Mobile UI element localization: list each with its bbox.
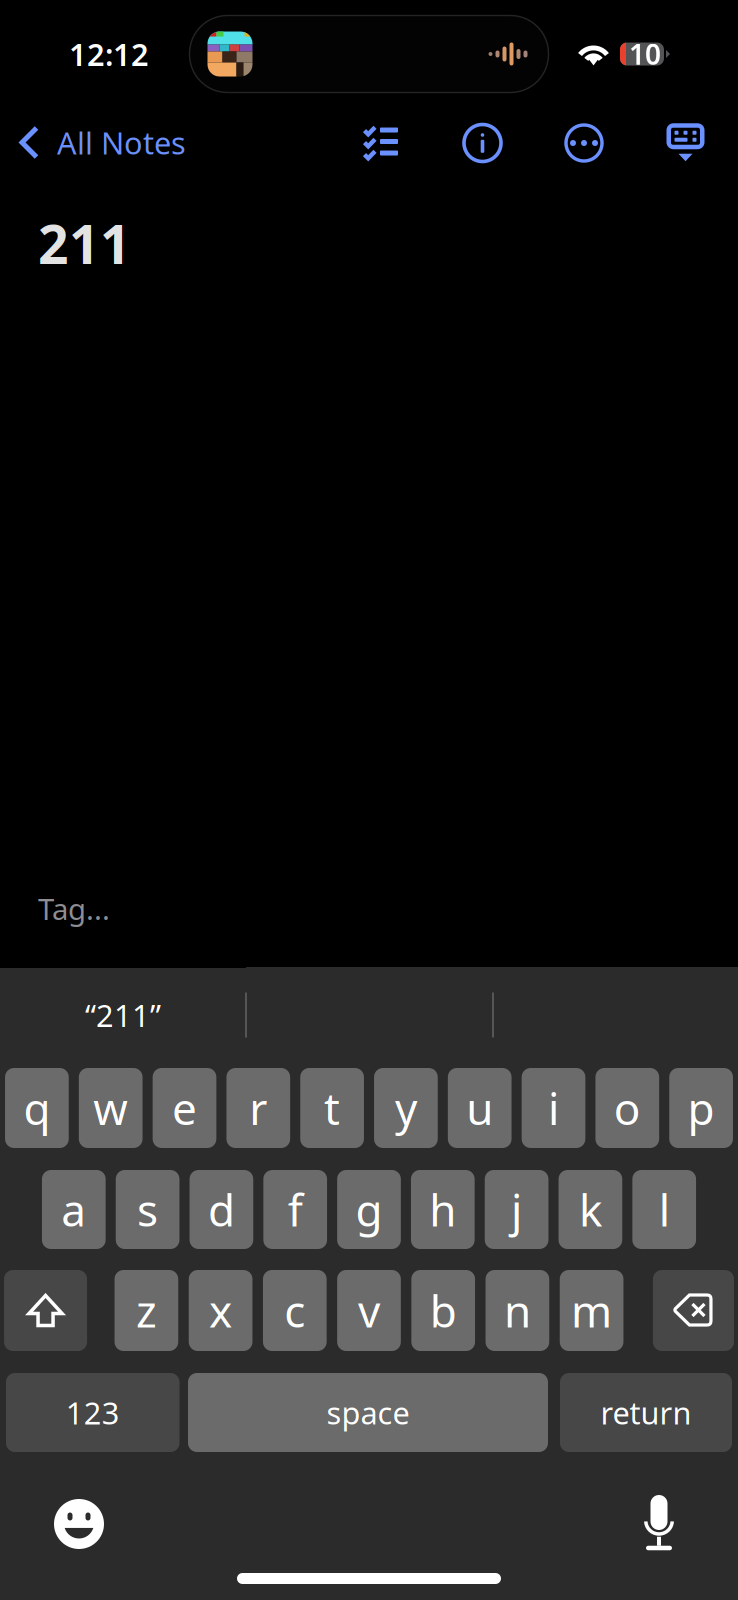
staticText: l (659, 1180, 670, 1239)
staticText: c (284, 1281, 305, 1340)
staticText: j (511, 1180, 522, 1239)
button[interactable]: Delete (653, 1270, 734, 1351)
button[interactable]: j (485, 1170, 548, 1249)
staticText: space (326, 1392, 409, 1433)
button[interactable]: v (337, 1270, 401, 1351)
button[interactable]: q (5, 1068, 69, 1148)
staticText: m (571, 1281, 612, 1340)
button[interactable]: 123 (6, 1373, 179, 1452)
button[interactable]: p (669, 1068, 733, 1148)
staticText: x (209, 1281, 232, 1340)
button[interactable]: o (595, 1068, 659, 1148)
button[interactable]: t (300, 1068, 364, 1148)
staticText: q (23, 1079, 50, 1137)
staticText: h (429, 1180, 456, 1239)
button[interactable]: a (42, 1170, 106, 1249)
staticText: u (466, 1079, 493, 1137)
staticText: s (137, 1180, 158, 1239)
button[interactable]: w (79, 1068, 143, 1148)
button[interactable]: x (189, 1270, 252, 1351)
button[interactable]: More options (548, 113, 620, 179)
staticText: 12:12 (69, 34, 149, 74)
button[interactable]: m (560, 1270, 623, 1351)
staticText: k (579, 1180, 602, 1239)
button[interactable]: e (153, 1068, 216, 1148)
staticText: t (324, 1079, 340, 1137)
button[interactable]: d (190, 1170, 253, 1249)
staticText: 10 (629, 35, 661, 73)
button[interactable]: z (115, 1270, 178, 1351)
button[interactable]: g (337, 1170, 401, 1249)
staticText: n (504, 1281, 531, 1340)
button[interactable]: y (374, 1068, 438, 1148)
button[interactable]: b (411, 1270, 475, 1351)
button[interactable]: h (411, 1170, 475, 1249)
staticText: 123 (66, 1392, 120, 1433)
staticText: g (355, 1180, 382, 1239)
staticText: All Notes (57, 122, 186, 163)
staticText: f (288, 1180, 303, 1239)
staticText: a (61, 1180, 86, 1239)
button[interactable]: Shift (4, 1270, 87, 1351)
staticText: return (600, 1392, 691, 1433)
staticText: i (548, 1079, 559, 1137)
button[interactable]: “211” (0, 967, 246, 1063)
button[interactable]: Checklist (345, 113, 417, 179)
staticText: v (358, 1281, 380, 1340)
button[interactable]: f (263, 1170, 327, 1249)
button[interactable]: return (560, 1373, 732, 1452)
staticText: p (688, 1079, 715, 1137)
button[interactable]: Dictation (622, 1488, 696, 1560)
staticText: r (249, 1079, 267, 1137)
staticText: b (430, 1281, 457, 1340)
button[interactable]: Hide Keyboard (649, 113, 721, 179)
staticText: z (136, 1281, 157, 1340)
staticText: 211 (38, 208, 131, 279)
staticText: d (208, 1180, 235, 1239)
button[interactable]: u (448, 1068, 512, 1148)
button[interactable]: Info (446, 113, 518, 179)
button[interactable]: All Notes (0, 122, 200, 170)
button[interactable]: Emoji keyboard (42, 1488, 116, 1560)
staticText: e (172, 1079, 197, 1137)
button[interactable]: i (522, 1068, 585, 1148)
button[interactable]: s (116, 1170, 179, 1249)
staticText: “211” (85, 995, 161, 1035)
button[interactable]: c (263, 1270, 327, 1351)
staticText: y (395, 1079, 417, 1137)
staticText: w (93, 1079, 128, 1137)
button[interactable]: n (485, 1270, 549, 1351)
staticText: Tag... (38, 889, 110, 928)
button[interactable]: r (226, 1068, 290, 1148)
button[interactable]: l (632, 1170, 696, 1249)
button[interactable]: k (559, 1170, 622, 1249)
staticText: o (614, 1079, 641, 1137)
button[interactable]: space (188, 1373, 548, 1452)
